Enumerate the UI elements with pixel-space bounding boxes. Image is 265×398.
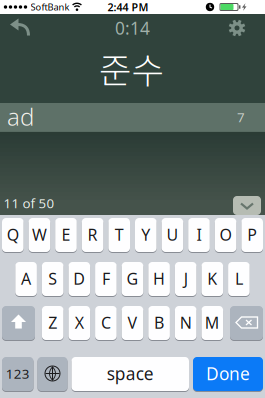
- button[interactable]: K: [201, 261, 223, 296]
- button[interactable]: V: [122, 305, 143, 340]
- staticText: C: [101, 312, 111, 333]
- button[interactable]: B: [148, 305, 170, 340]
- staticText: 123: [6, 365, 30, 382]
- staticText: F: [102, 268, 110, 289]
- button[interactable]: Dismiss Keyboard: [233, 196, 261, 215]
- staticText: 7: [237, 108, 245, 126]
- staticText: space: [107, 362, 154, 385]
- button[interactable]: 123: [2, 356, 33, 391]
- staticText: T: [115, 224, 124, 245]
- button[interactable]: Y: [135, 217, 157, 252]
- staticText: Done: [206, 362, 250, 385]
- staticText: 0:14: [115, 16, 150, 39]
- staticText: M: [205, 312, 220, 333]
- button[interactable]: A: [15, 261, 37, 296]
- staticText: S: [48, 268, 57, 289]
- button[interactable]: Shift: [2, 305, 35, 340]
- staticText: P: [247, 224, 257, 245]
- staticText: R: [88, 224, 98, 245]
- staticText: 준수: [98, 42, 164, 94]
- staticText: O: [220, 224, 232, 245]
- staticText: X: [75, 312, 84, 333]
- staticText: J: [184, 268, 188, 289]
- button[interactable]: U: [162, 217, 183, 252]
- staticText: K: [207, 268, 217, 289]
- staticText: B: [154, 312, 164, 333]
- button[interactable]: D: [68, 261, 90, 296]
- staticText: V: [127, 312, 137, 333]
- button[interactable]: Done: [193, 356, 263, 391]
- staticText: N: [180, 312, 192, 333]
- staticText: Y: [141, 224, 150, 245]
- staticText: U: [166, 224, 178, 245]
- button[interactable]: E: [55, 217, 77, 252]
- staticText: D: [73, 268, 85, 289]
- staticText: Q: [7, 224, 19, 245]
- button[interactable]: X: [68, 305, 90, 340]
- staticText: H: [153, 268, 165, 289]
- button[interactable]: C: [95, 305, 117, 340]
- button[interactable]: F: [95, 261, 117, 296]
- staticText: 11 of 50: [3, 194, 54, 212]
- button[interactable]: Settings: [228, 19, 246, 37]
- staticText: ad: [7, 101, 34, 132]
- button[interactable]: M: [201, 305, 223, 340]
- button[interactable]: Z: [42, 305, 63, 340]
- button[interactable]: space: [71, 356, 189, 391]
- staticText: G: [126, 268, 138, 289]
- button[interactable]: L: [228, 261, 250, 296]
- staticText: 2:44 PM: [107, 0, 148, 14]
- button[interactable]: S: [42, 261, 63, 296]
- button[interactable]: W: [29, 217, 50, 252]
- button[interactable]: J: [175, 261, 196, 296]
- button[interactable]: N: [175, 305, 196, 340]
- button[interactable]: T: [108, 217, 130, 252]
- button[interactable]: Next Keyboard: [37, 356, 67, 391]
- button[interactable]: P: [241, 217, 263, 252]
- button[interactable]: Q: [2, 217, 24, 252]
- staticText: L: [235, 268, 243, 289]
- staticText: E: [61, 224, 70, 245]
- staticText: W: [32, 224, 47, 245]
- button[interactable]: Back: [10, 18, 34, 38]
- staticText: I: [196, 224, 201, 245]
- button[interactable]: Delete: [230, 305, 263, 340]
- button[interactable]: O: [215, 217, 236, 252]
- staticText: Z: [48, 312, 57, 333]
- button[interactable]: H: [148, 261, 170, 296]
- staticText: A: [21, 268, 31, 289]
- button[interactable]: R: [82, 217, 103, 252]
- button[interactable]: I: [188, 217, 210, 252]
- button[interactable]: G: [122, 261, 143, 296]
- staticText: SoftBank: [30, 1, 69, 13]
